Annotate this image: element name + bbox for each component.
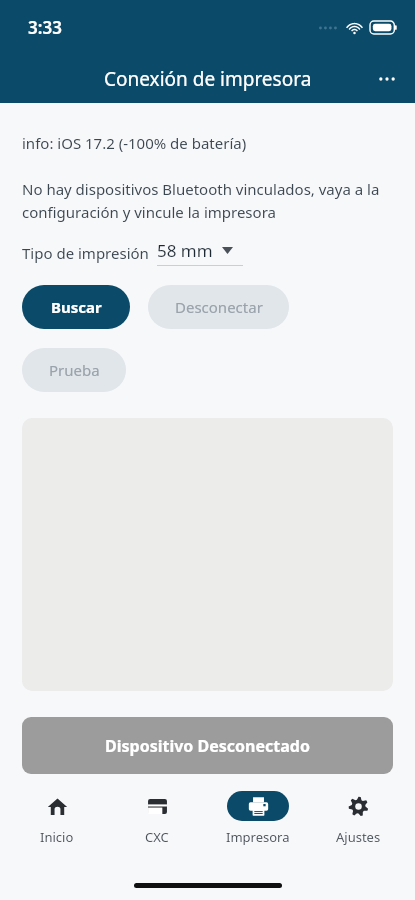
button[interactable]: 58 mm bbox=[157, 239, 233, 265]
staticText: Buscar bbox=[51, 297, 102, 317]
staticText: Impresora bbox=[226, 828, 290, 846]
staticText: 3:33 bbox=[28, 16, 62, 39]
staticText: Conexión de impresora bbox=[104, 66, 312, 92]
button[interactable]: Desconectar bbox=[148, 285, 289, 329]
button[interactable]: Prueba bbox=[22, 348, 126, 392]
staticText: info: iOS 17.2 (-100% de batería) bbox=[22, 133, 247, 153]
staticText: Inicio bbox=[40, 828, 74, 846]
button[interactable]: Buscar bbox=[22, 285, 130, 329]
button[interactable]: Ajustes bbox=[314, 782, 402, 855]
button[interactable]: CXC bbox=[113, 782, 201, 855]
button[interactable]: Inicio bbox=[13, 782, 101, 855]
staticText: CXC bbox=[145, 828, 169, 846]
staticText: Dispositivo Desconectado bbox=[105, 735, 310, 757]
button[interactable]: Dispositivo Desconectado bbox=[22, 717, 393, 774]
button[interactable]: Más opciones bbox=[365, 57, 409, 101]
staticText: No hay dispositivos Bluetooth vinculados… bbox=[22, 179, 380, 222]
button[interactable]: Impresora bbox=[214, 782, 302, 855]
staticText: Desconectar bbox=[175, 297, 263, 317]
staticText: Ajustes bbox=[336, 828, 381, 846]
staticText: Prueba bbox=[49, 360, 100, 380]
staticText: 58 mm bbox=[157, 239, 213, 262]
staticText: Tipo de impresión bbox=[22, 243, 149, 263]
